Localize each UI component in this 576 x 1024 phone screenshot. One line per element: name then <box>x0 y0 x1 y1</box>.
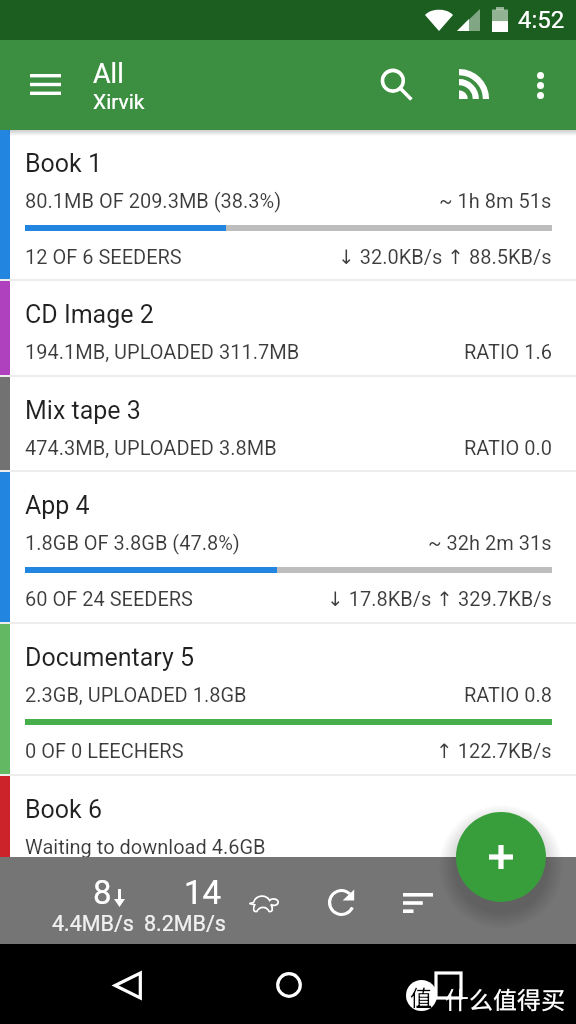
button[interactable]: Home <box>261 957 317 1013</box>
staticText: Waiting to download 4.6GB <box>25 835 266 858</box>
staticText: RATIO 1.6 <box>464 340 552 363</box>
button[interactable]: Turtle mode <box>239 878 289 928</box>
staticText: 12 OF 6 SEEDERS <box>25 245 182 268</box>
staticText: App 4 <box>25 491 90 520</box>
button[interactable]: Refresh <box>316 877 366 927</box>
staticText: ↓ 32.0KB/s ↑ 88.5KB/s <box>338 245 552 268</box>
button[interactable]: CD Image 2 <box>0 281 576 377</box>
staticText: RATIO 0.8 <box>464 683 552 706</box>
button[interactable]: App 4 <box>0 472 576 624</box>
button[interactable]: Download speed <box>52 867 140 939</box>
button[interactable]: Mix tape 3 <box>0 377 576 472</box>
button[interactable]: RSS feeds <box>445 56 501 112</box>
staticText: All <box>93 58 124 90</box>
staticText: Mix tape 3 <box>25 396 141 425</box>
staticText: 80.1MB OF 209.3MB (38.3%) <box>25 189 282 212</box>
button[interactable]: Recent apps <box>420 957 476 1013</box>
button[interactable]: Upload speed <box>144 867 232 939</box>
button[interactable]: Open navigation menu <box>17 56 73 112</box>
staticText: 1.8GB OF 3.8GB (47.8%) <box>25 531 240 554</box>
staticText: 194.1MB, UPLOADED 311.7MB <box>25 340 300 363</box>
staticText: CD Image 2 <box>25 300 154 329</box>
button[interactable]: Search <box>368 56 424 112</box>
button[interactable]: Add torrent <box>456 812 546 902</box>
staticText: 8 <box>93 873 112 912</box>
staticText: 什么值得买 <box>445 981 565 1016</box>
staticText: 4:52 <box>518 6 565 34</box>
staticText: Documentary 5 <box>25 643 195 672</box>
button[interactable]: Documentary 5 <box>0 624 576 776</box>
staticText: Book 6 <box>25 795 103 824</box>
button[interactable]: Book 6 <box>0 776 576 871</box>
staticText: 值 <box>410 980 433 1011</box>
staticText: Book 1 <box>25 149 103 178</box>
button[interactable]: Sort <box>393 878 443 928</box>
staticText: RATIO 0.0 <box>464 436 552 459</box>
staticText: ↑ 122.7KB/s <box>436 739 552 762</box>
staticText: 8.2MB/s <box>144 911 226 936</box>
button[interactable]: Back <box>100 957 156 1013</box>
staticText: 474.3MB, UPLOADED 3.8MB <box>25 436 277 459</box>
staticText: 2.3GB, UPLOADED 1.8GB <box>25 683 247 706</box>
staticText: ↓ 17.8KB/s ↑ 329.7KB/s <box>327 587 552 610</box>
staticText: 4.4MB/s <box>52 911 134 936</box>
staticText: 60 OF 24 SEEDERS <box>25 587 193 610</box>
button[interactable]: More options <box>512 57 568 113</box>
staticText: 14 <box>184 873 222 912</box>
staticText: Xirvik <box>93 90 145 115</box>
staticText: ~ 32h 2m 31s <box>428 531 552 554</box>
staticText: ~ 1h 8m 51s <box>439 189 552 212</box>
button[interactable]: Book 1 <box>0 130 576 281</box>
staticText: 0 OF 0 LEECHERS <box>25 739 184 762</box>
